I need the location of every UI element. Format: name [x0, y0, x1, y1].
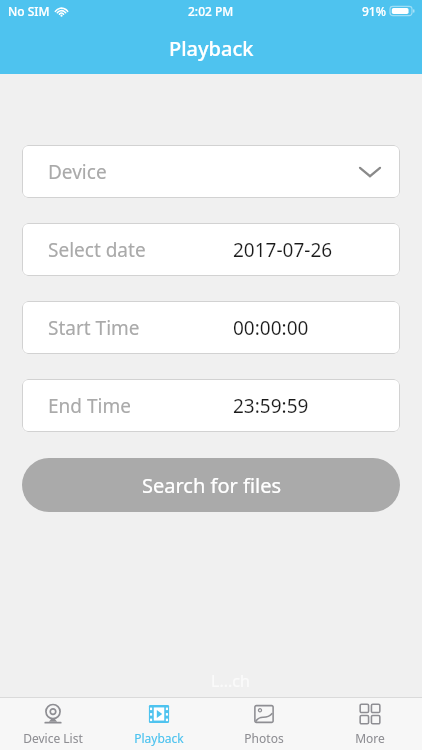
- staticText: No SIM: [8, 3, 50, 19]
- button[interactable]: Device List: [0, 698, 105, 750]
- staticText: 2:02 PM: [188, 3, 234, 19]
- button[interactable]: Device: [22, 145, 400, 198]
- button[interactable]: More: [317, 698, 422, 750]
- button[interactable]: Playback: [106, 698, 211, 750]
- button[interactable]: Search for files: [22, 458, 400, 512]
- staticText: Device: [48, 159, 107, 185]
- staticText: Select date: [48, 237, 146, 263]
- staticText: 2017-07-26: [233, 237, 333, 263]
- button[interactable]: Select date: [22, 223, 400, 276]
- button[interactable]: Start Time: [22, 301, 400, 354]
- staticText: Playback: [169, 35, 254, 62]
- button[interactable]: End Time: [22, 379, 400, 432]
- staticText: More: [355, 730, 385, 746]
- staticText: 00:00:00: [233, 315, 309, 341]
- staticText: 23:59:59: [233, 393, 309, 419]
- staticText: Start Time: [48, 315, 140, 341]
- button[interactable]: Photos: [211, 698, 316, 750]
- staticText: Photos: [244, 730, 284, 746]
- staticText: Search for files: [142, 472, 281, 499]
- staticText: Playback: [134, 730, 184, 746]
- staticText: End Time: [48, 393, 131, 419]
- staticText: L...ch: [211, 670, 250, 692]
- staticText: 91%: [362, 3, 386, 19]
- staticText: Device List: [23, 730, 83, 746]
